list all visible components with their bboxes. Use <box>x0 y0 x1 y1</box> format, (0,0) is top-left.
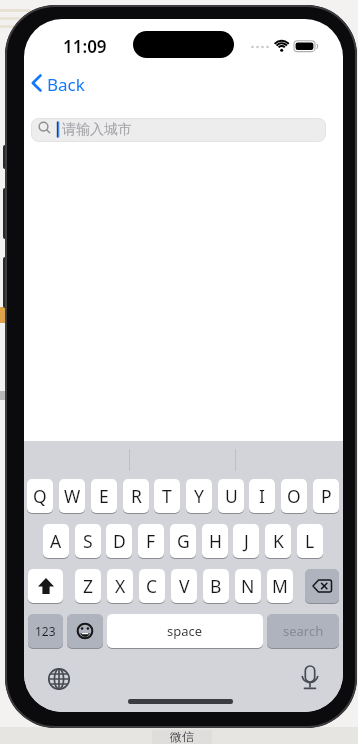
button[interactable]: U <box>218 479 244 513</box>
button[interactable]: B <box>203 569 229 603</box>
button[interactable]: D <box>106 524 132 558</box>
staticText: G <box>177 529 190 553</box>
button[interactable] <box>42 662 75 695</box>
staticText: I <box>259 484 265 508</box>
button[interactable] <box>293 662 326 695</box>
staticText: T <box>162 484 172 508</box>
button[interactable]: S <box>75 524 101 558</box>
button[interactable]: M <box>267 569 293 603</box>
staticText: C <box>146 574 158 598</box>
button[interactable]: Y <box>186 479 212 513</box>
button[interactable]: Back <box>26 69 96 97</box>
staticText: search <box>283 622 324 640</box>
button[interactable]: N <box>235 569 261 603</box>
staticText: 11:09 <box>63 35 107 53</box>
staticText: M <box>272 574 288 598</box>
staticText: U <box>225 484 238 508</box>
button[interactable] <box>305 569 339 603</box>
button[interactable]: G <box>170 524 196 558</box>
staticText: N <box>241 574 255 598</box>
button[interactable]: X <box>107 569 133 603</box>
button[interactable]: J <box>233 524 259 558</box>
staticText: R <box>131 484 142 508</box>
button[interactable]: K <box>265 524 291 558</box>
button[interactable] <box>31 118 326 142</box>
staticText: Y <box>194 484 204 508</box>
staticText: Z <box>83 574 94 598</box>
button[interactable] <box>67 614 103 648</box>
button[interactable]: search <box>267 614 339 648</box>
staticText: space <box>167 622 203 640</box>
button[interactable] <box>28 569 63 603</box>
button[interactable]: T <box>154 479 180 513</box>
staticText: Back <box>47 73 85 93</box>
staticText: W <box>64 484 81 508</box>
staticText: Q <box>33 484 47 508</box>
button[interactable]: Q <box>27 479 53 513</box>
staticText: 微信 <box>170 729 194 744</box>
button[interactable]: E <box>91 479 117 513</box>
button[interactable]: O <box>281 479 307 513</box>
button[interactable]: W <box>59 479 85 513</box>
staticText: H <box>209 529 222 553</box>
staticText: D <box>113 529 126 553</box>
button[interactable]: V <box>171 569 197 603</box>
staticText: A <box>50 529 62 553</box>
button[interactable]: A <box>43 524 69 558</box>
staticText: S <box>83 529 93 553</box>
button[interactable]: Z <box>75 569 101 603</box>
button[interactable]: R <box>123 479 149 513</box>
button[interactable]: L <box>297 524 323 558</box>
staticText: E <box>99 484 109 508</box>
button[interactable]: space <box>107 614 263 648</box>
button[interactable]: F <box>138 524 164 558</box>
staticText: L <box>305 529 315 553</box>
button[interactable]: I <box>249 479 275 513</box>
button[interactable]: C <box>139 569 165 603</box>
staticText: K <box>273 529 284 553</box>
staticText: O <box>287 484 301 508</box>
staticText: 123 <box>35 623 56 639</box>
button[interactable]: P <box>313 479 339 513</box>
staticText: V <box>179 574 190 598</box>
staticText: 请输入城市 <box>62 121 132 139</box>
staticText: F <box>146 529 156 553</box>
staticText: B <box>210 574 222 598</box>
staticText: J <box>244 529 249 553</box>
button[interactable]: H <box>202 524 228 558</box>
staticText: P <box>321 484 332 508</box>
button[interactable]: 123 <box>28 614 63 648</box>
staticText: X <box>115 574 126 598</box>
